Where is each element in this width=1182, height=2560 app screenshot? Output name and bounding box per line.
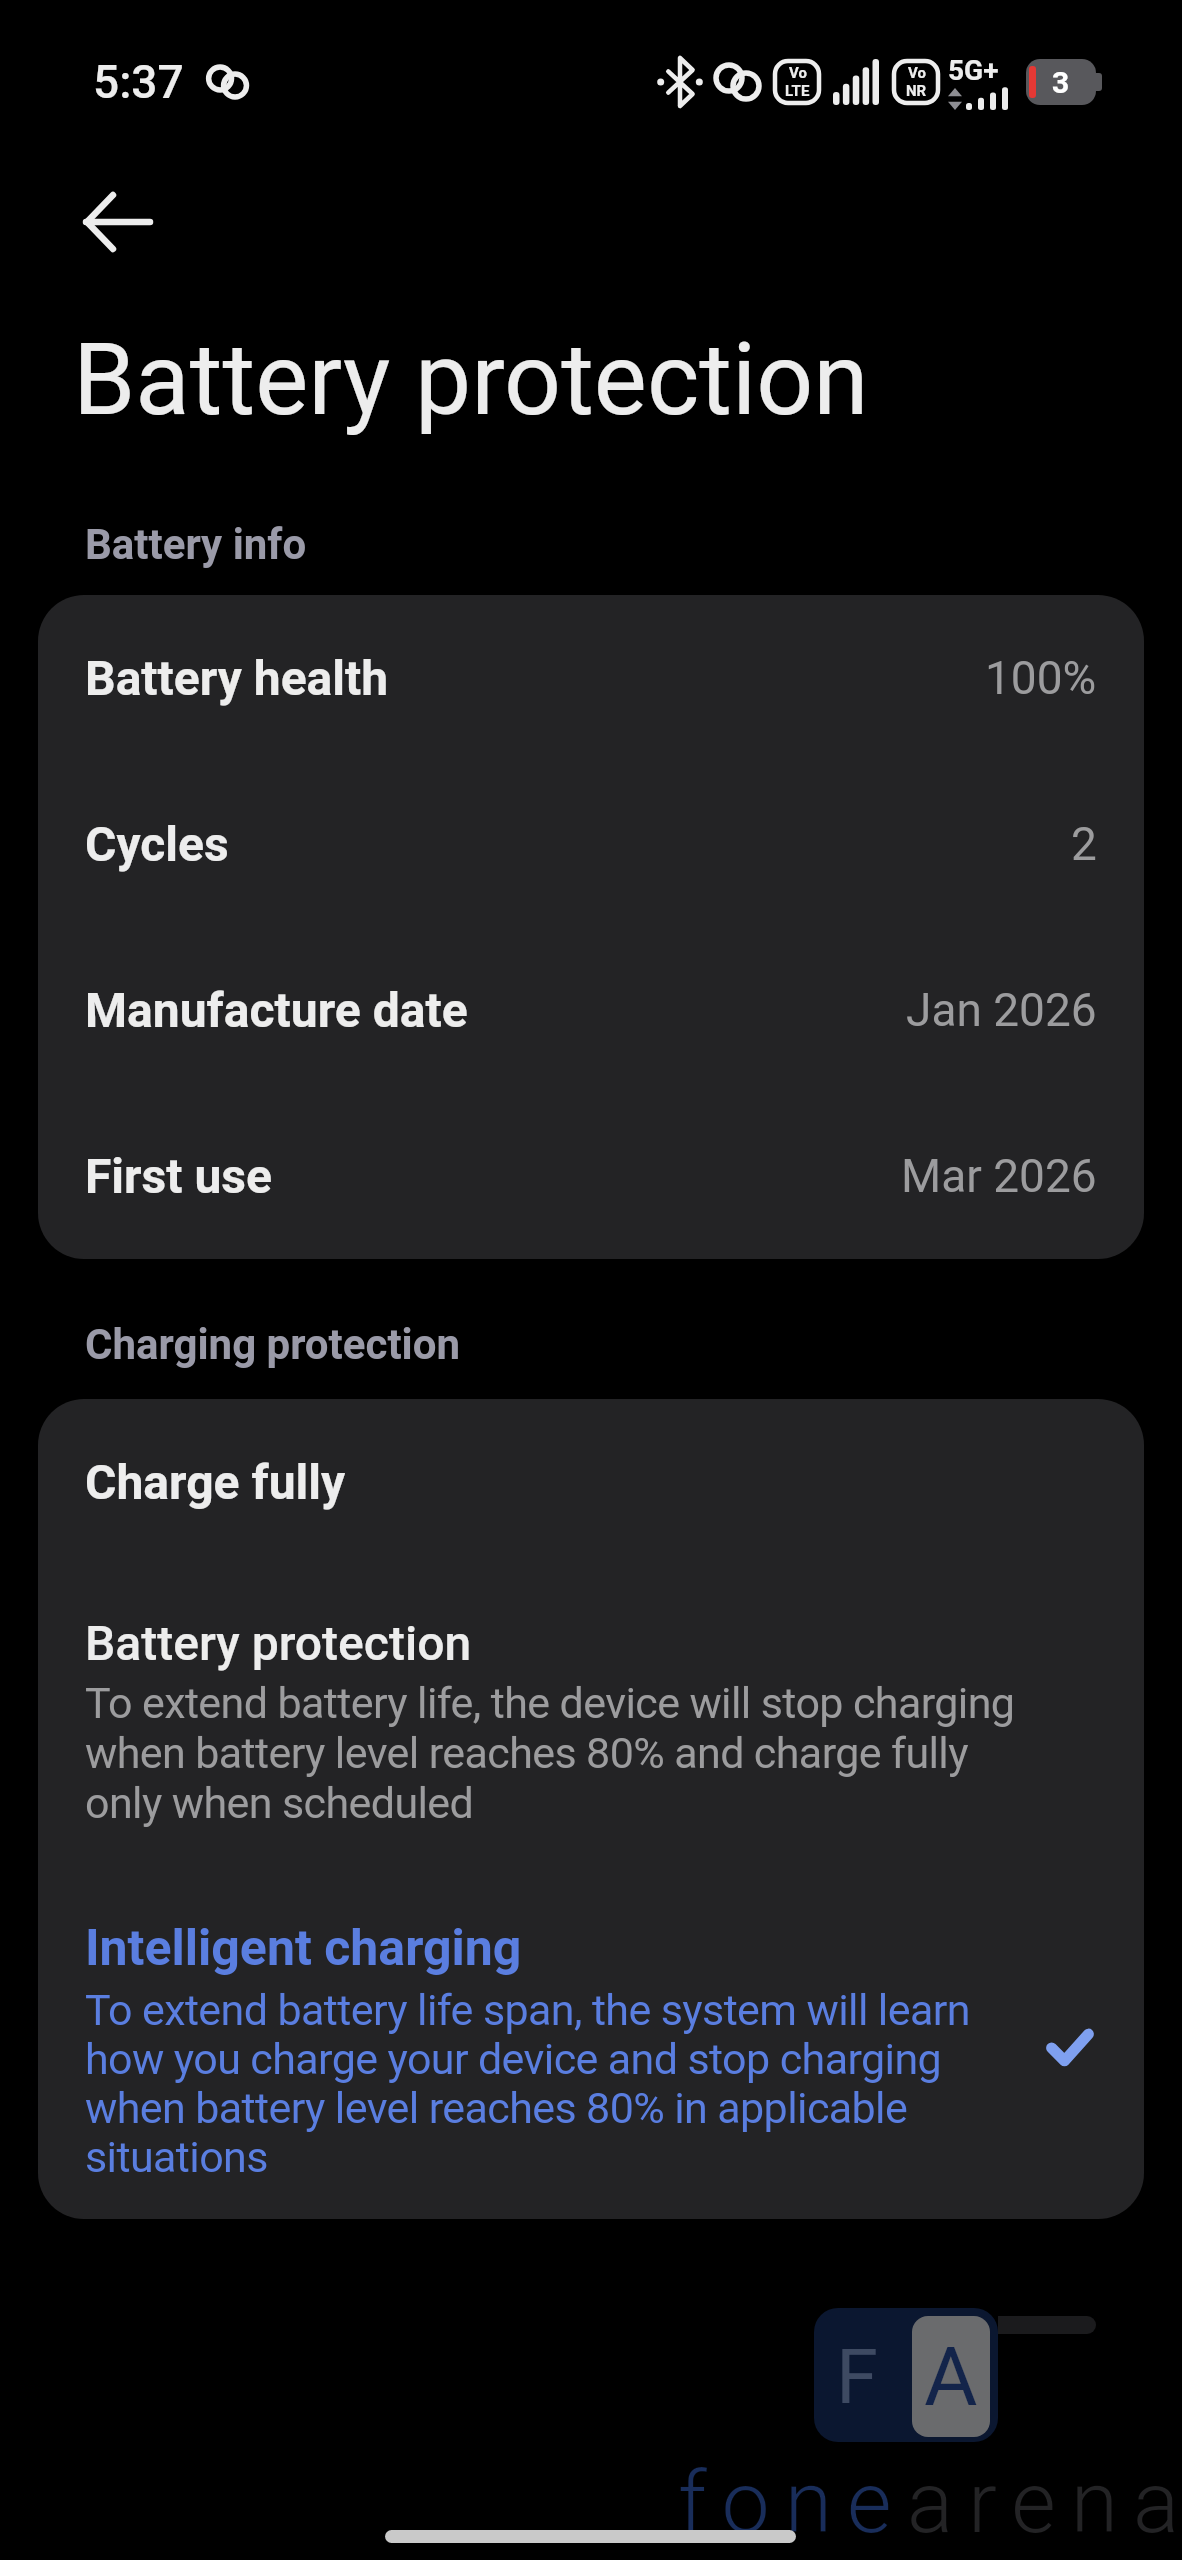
staticText: 100%	[985, 651, 1097, 705]
staticText: To extend battery life span, the system …	[85, 1985, 1047, 2182]
staticText: Charging protection	[85, 1320, 461, 1369]
staticText: Manufacture date	[85, 982, 468, 1038]
button[interactable]: Manufacture date	[38, 927, 1144, 1093]
staticText: Jan 2026	[906, 983, 1097, 1037]
staticText: NR	[906, 82, 927, 100]
button[interactable]: Battery protection	[38, 1564, 1144, 1828]
staticText: arena	[907, 2452, 1182, 2553]
button[interactable]: Charge fully	[38, 1399, 1144, 1564]
staticText: Mar 2026	[901, 1149, 1097, 1203]
staticText: Charge fully	[85, 1454, 346, 1510]
staticText: A	[924, 2329, 978, 2425]
staticText: Intelligent charging	[85, 1919, 522, 1978]
button[interactable]: Cycles	[38, 761, 1144, 927]
staticText: Battery protection	[73, 321, 869, 438]
staticText: 2	[1071, 817, 1097, 871]
staticText: F	[836, 2332, 879, 2421]
button[interactable]	[78, 189, 158, 255]
staticText: 5:37	[93, 55, 184, 109]
staticText: Battery health	[85, 650, 389, 706]
staticText: Cycles	[85, 816, 229, 872]
button[interactable]: First use	[38, 1093, 1144, 1259]
button[interactable]: Battery health	[38, 595, 1144, 761]
staticText: LTE	[785, 82, 810, 100]
staticText: Vo	[789, 64, 807, 82]
staticText: 3	[1052, 65, 1070, 100]
button[interactable]: Intelligent charging	[38, 1828, 1144, 2219]
staticText: First use	[85, 1148, 272, 1204]
staticText: Battery info	[85, 520, 307, 569]
staticText: fone	[678, 2452, 907, 2553]
staticText: To extend battery life, the device will …	[85, 1678, 1015, 1828]
staticText: Vo	[908, 64, 926, 82]
staticText: Battery protection	[85, 1615, 472, 1671]
staticText: 5G+	[948, 54, 999, 87]
